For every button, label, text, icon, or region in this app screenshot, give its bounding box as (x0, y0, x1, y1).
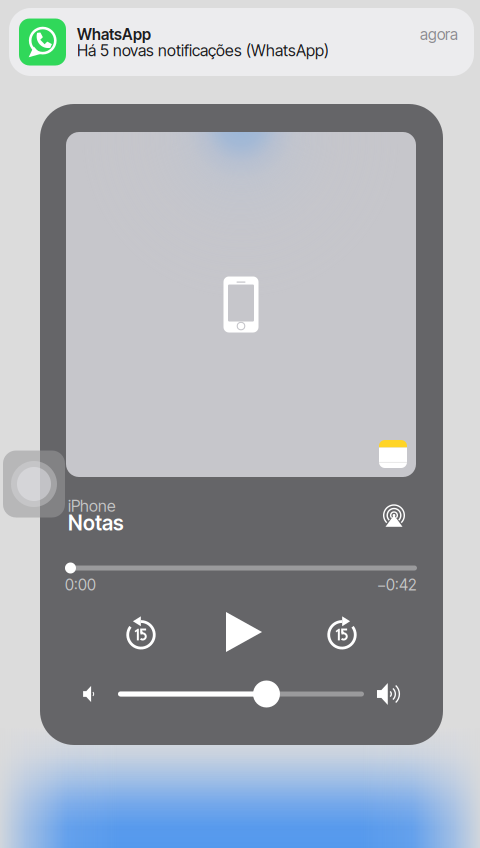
staticText: iPhone (68, 496, 116, 516)
button[interactable]: Control (3, 450, 65, 517)
staticText: Há 5 novas notificações (WhatsApp) (77, 41, 329, 60)
button[interactable]: AirPlay (374, 496, 414, 536)
staticText: WhatsApp (77, 25, 151, 44)
button[interactable]: Play (215, 603, 273, 661)
button[interactable]: WhatsApp (9, 8, 474, 76)
staticText: 0:00 (65, 576, 96, 594)
button[interactable]: Skip forward 15 seconds (313, 603, 371, 661)
staticText: Notas (68, 510, 124, 535)
staticText: agora (420, 25, 458, 44)
button[interactable]: Skip back 15 seconds (112, 603, 170, 661)
staticText: −0:42 (377, 576, 417, 594)
